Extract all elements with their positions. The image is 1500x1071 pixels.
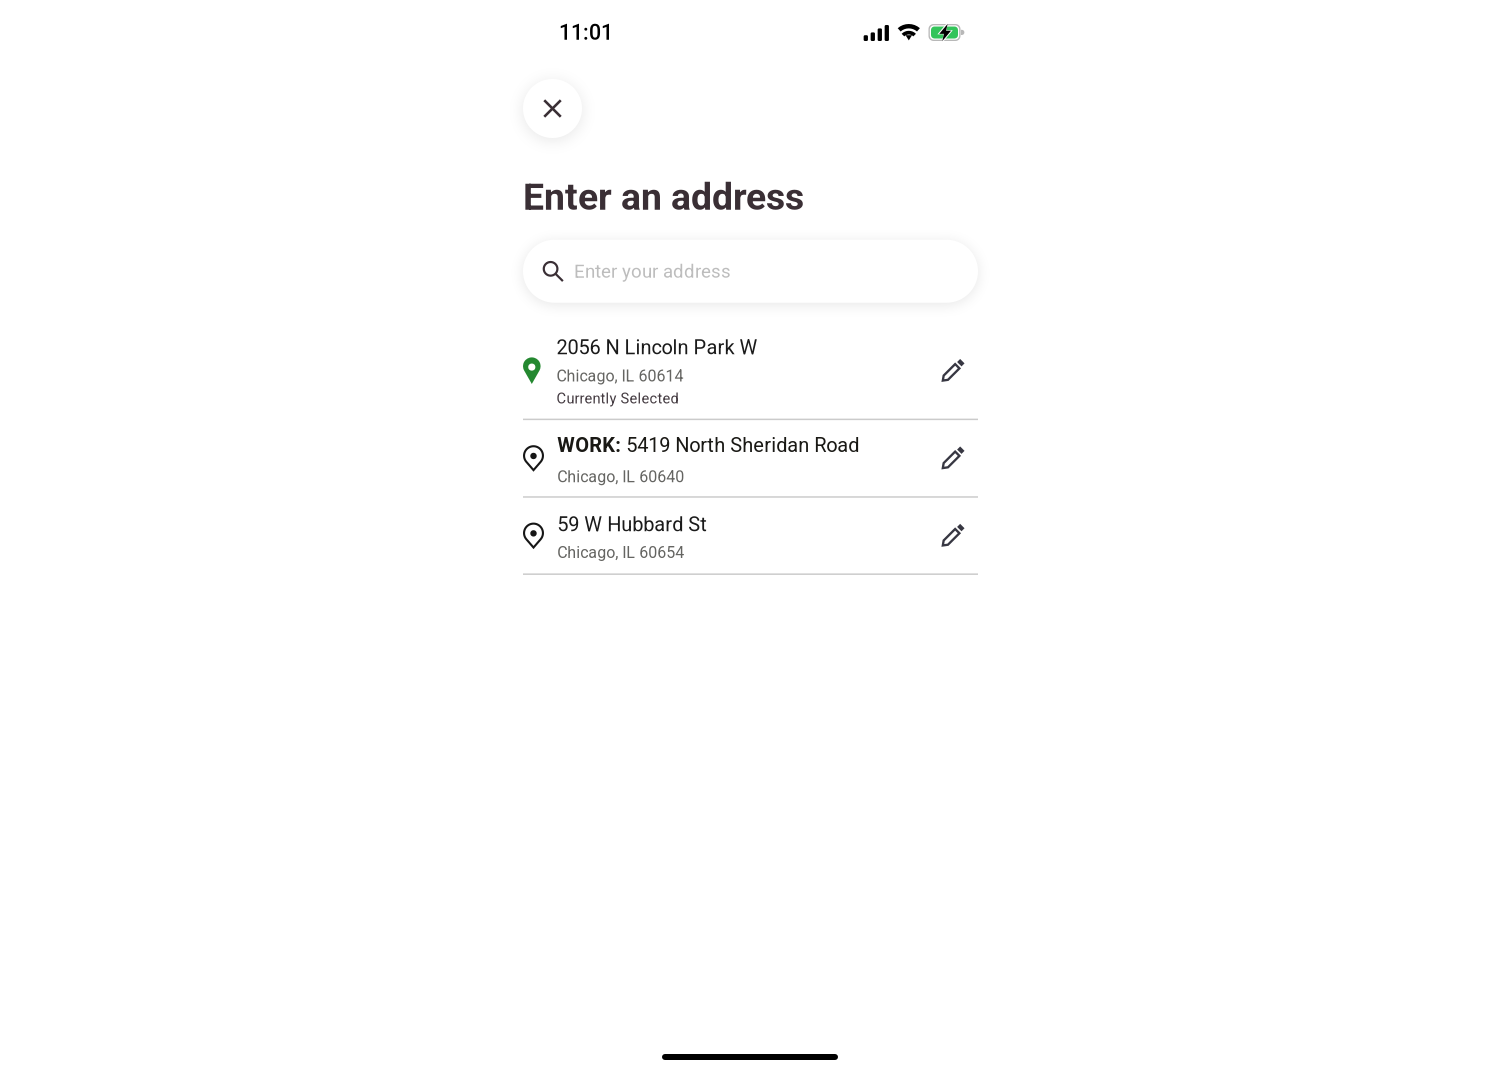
button[interactable]: Close <box>523 79 582 138</box>
button[interactable]: 2056 N Lincoln Park W <box>523 323 978 419</box>
staticText: WORK: 5419 North Sheridan Road <box>557 434 859 456</box>
button[interactable]: Enter your address <box>523 240 978 303</box>
staticText: 2056 N Lincoln Park W <box>557 336 758 359</box>
staticText: 11:01 <box>559 20 613 45</box>
staticText: Chicago, IL 60654 <box>557 543 684 562</box>
button[interactable]: WORK: 5419 North Sheridan Road <box>523 420 978 496</box>
staticText: Chicago, IL 60640 <box>557 467 684 486</box>
staticText: 59 W Hubbard St <box>557 513 707 536</box>
staticText: Enter an address <box>523 175 804 219</box>
staticText: Currently Selected <box>557 390 679 407</box>
button[interactable]: 59 W Hubbard St <box>523 498 978 573</box>
staticText: Enter your address <box>574 260 731 282</box>
staticText: Chicago, IL 60614 <box>557 367 684 385</box>
